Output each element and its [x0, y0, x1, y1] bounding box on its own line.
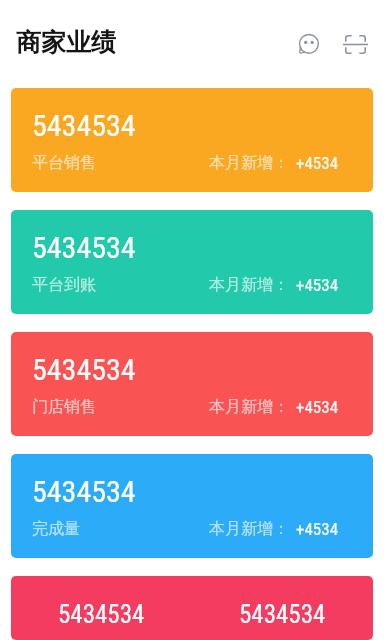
button[interactable]: Scan QR code: [340, 29, 370, 59]
staticText: 5434534: [32, 352, 136, 387]
staticText: 本月新增：: [209, 275, 289, 295]
staticText: +4534: [296, 275, 339, 295]
staticText: 5434534: [32, 108, 136, 143]
staticText: +4534: [296, 519, 339, 539]
staticText: 5434534: [32, 230, 136, 265]
staticText: 本月新增：: [209, 519, 289, 539]
staticText: 本月新增：: [209, 153, 289, 173]
button[interactable]: 5434534: [11, 454, 373, 558]
staticText: 5434534: [32, 474, 136, 509]
staticText: 平台销售: [32, 153, 96, 173]
staticText: +4534: [296, 153, 339, 173]
staticText: 5434534: [58, 600, 145, 629]
staticText: 本月新增：: [209, 397, 289, 417]
button[interactable]: 5434534: [11, 210, 373, 314]
staticText: 5434534: [239, 600, 326, 629]
staticText: 商家业绩: [16, 27, 116, 58]
button[interactable]: Messages: [293, 29, 323, 59]
button[interactable]: 5434534: [11, 88, 373, 192]
staticText: 完成量: [32, 519, 80, 539]
staticText: +4534: [296, 397, 339, 417]
button[interactable]: 5434534: [11, 576, 373, 640]
staticText: 门店销售: [32, 397, 96, 417]
staticText: 平台到账: [32, 275, 96, 295]
button[interactable]: 5434534: [11, 332, 373, 436]
